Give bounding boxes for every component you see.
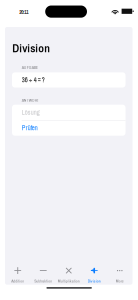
button[interactable]: Prüfen: [12, 120, 125, 136]
button[interactable]: More: [107, 265, 132, 287]
staticText: 20:11: [19, 9, 28, 16]
staticText: More: [116, 278, 124, 284]
staticText: Multiplikation: [58, 278, 80, 284]
staticText: Addition: [11, 278, 24, 284]
button[interactable]: Division: [81, 265, 107, 287]
button[interactable]: Multiplikation: [56, 265, 81, 287]
staticText: Prüfen: [22, 124, 38, 132]
staticText: AUFGABE: [22, 65, 38, 70]
staticText: Division: [12, 40, 50, 56]
staticText: ANTWORT: [22, 97, 39, 103]
button[interactable]: Subtraktion: [30, 265, 56, 287]
staticText: Division: [88, 278, 101, 284]
staticText: Lösung: [22, 108, 40, 117]
button[interactable]: Addition: [5, 265, 30, 287]
staticText: Subtraktion: [34, 278, 52, 284]
button[interactable]: Lösung: [12, 105, 125, 120]
staticText: 36 ÷ 4 = ?: [22, 75, 45, 84]
